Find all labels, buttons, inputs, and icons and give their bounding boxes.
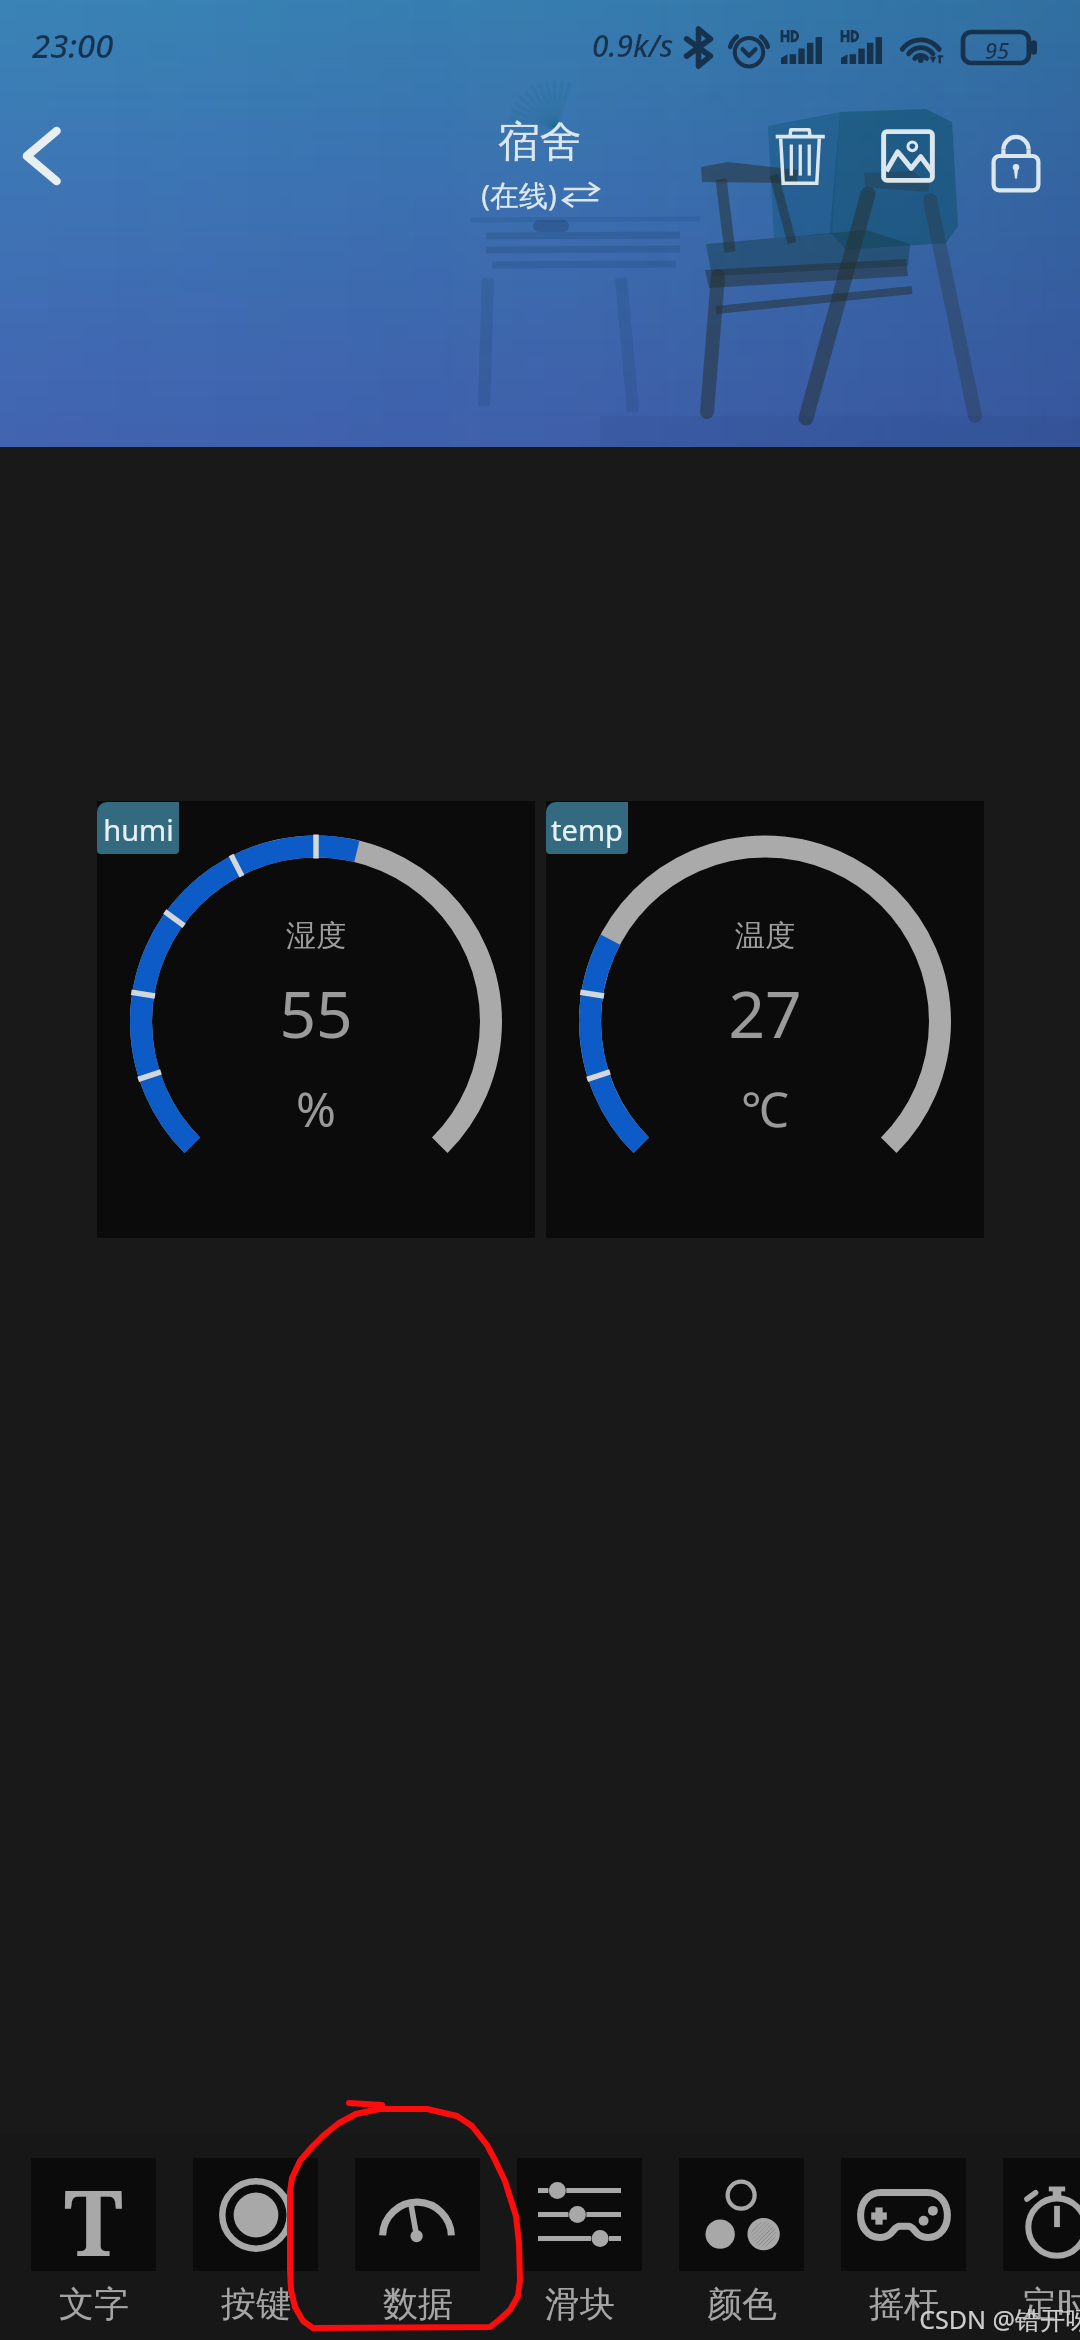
- staticText: (在线): [481, 175, 557, 215]
- staticText: 定时: [1022, 2282, 1080, 2326]
- staticText: CSDN @错开呀!: [919, 2302, 1080, 2336]
- staticText: 数据: [383, 2282, 453, 2326]
- staticText: %: [296, 1076, 336, 1141]
- staticText: temp: [551, 810, 623, 849]
- button[interactable]: 湿度: [97, 801, 535, 1238]
- staticText: 55: [279, 970, 353, 1057]
- button[interactable]: Lock: [974, 114, 1058, 198]
- staticText: 摇杆: [869, 2282, 939, 2326]
- button[interactable]: Change background image: [866, 114, 950, 198]
- staticText: 温度: [735, 917, 795, 955]
- staticText: 27: [728, 970, 802, 1057]
- staticText: 滑块: [545, 2282, 615, 2326]
- button[interactable]: 温度: [546, 801, 984, 1238]
- staticText: 宿舍: [498, 116, 582, 169]
- button[interactable]: 按键: [193, 2135, 355, 2337]
- button[interactable]: T: [31, 2135, 193, 2337]
- button[interactable]: 数据: [355, 2135, 517, 2337]
- staticText: 23:00: [32, 23, 114, 68]
- staticText: 按键: [221, 2282, 291, 2326]
- staticText: 湿度: [286, 917, 346, 955]
- button[interactable]: 滑块: [517, 2135, 679, 2337]
- staticText: 95: [985, 35, 1010, 65]
- staticText: T: [64, 2160, 123, 2273]
- button[interactable]: Back: [0, 106, 93, 206]
- button[interactable]: Delete: [758, 114, 842, 198]
- staticText: 0.9k/s: [592, 25, 674, 66]
- button[interactable]: 定时: [1003, 2135, 1080, 2337]
- staticText: ℃: [741, 1076, 789, 1141]
- button[interactable]: 摇杆: [841, 2135, 1003, 2337]
- staticText: 文字: [59, 2282, 129, 2326]
- staticText: humi: [103, 810, 174, 849]
- staticText: 颜色: [707, 2282, 777, 2326]
- button[interactable]: 颜色: [679, 2135, 841, 2337]
